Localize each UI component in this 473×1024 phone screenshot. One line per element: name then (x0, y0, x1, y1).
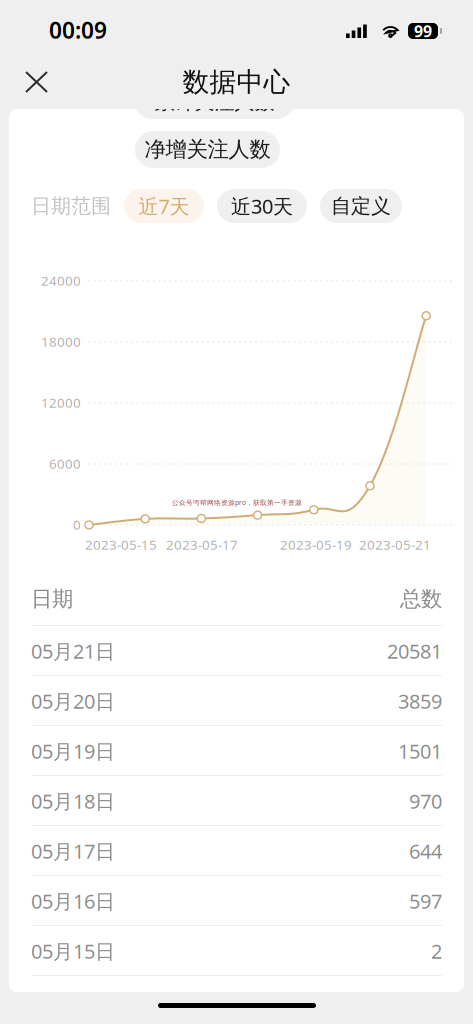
staticText: 99 (414, 20, 432, 42)
staticText: 6000 (49, 455, 81, 472)
staticText: 公众号丐帮网络资源pro，获取第一手资源 (172, 498, 302, 507)
staticText: 05月18日 (31, 788, 115, 814)
staticText: 18000 (41, 333, 81, 350)
staticText: 近7天 (138, 193, 189, 219)
button[interactable]: 近7天 (124, 189, 204, 223)
button[interactable]: 05月17日 (9, 826, 464, 876)
staticText: 2023-05-21 (359, 536, 431, 553)
staticText: 597 (409, 888, 442, 914)
staticText: 24000 (41, 272, 81, 289)
button[interactable]: 05月15日 (9, 926, 464, 976)
staticText: 05月15日 (31, 938, 115, 964)
staticText: 05月19日 (31, 738, 115, 764)
staticText: 05月16日 (31, 888, 115, 914)
staticText: 2 (431, 938, 442, 964)
button[interactable]: 05月21日 (9, 626, 464, 676)
staticText: 3859 (398, 688, 442, 714)
staticText: 970 (409, 788, 442, 814)
staticText: 2023-05-19 (280, 536, 352, 553)
staticText: 2023-05-17 (166, 536, 238, 553)
staticText: 总数 (400, 586, 442, 612)
button[interactable]: 累计关注人数 (135, 85, 294, 119)
staticText: 20581 (387, 638, 442, 664)
staticText: 净增关注人数 (144, 136, 270, 163)
staticText: 05月17日 (31, 838, 115, 864)
staticText: 00:09 (49, 15, 107, 45)
button[interactable]: 05月20日 (9, 676, 464, 726)
button[interactable]: 05月16日 (9, 876, 464, 926)
button[interactable]: 05月18日 (9, 776, 464, 826)
staticText: 近30天 (231, 193, 293, 219)
staticText: 05月20日 (31, 688, 115, 714)
staticText: 1501 (398, 738, 442, 764)
staticText: 自定义 (331, 194, 391, 218)
staticText: 2023-05-15 (85, 536, 157, 553)
button[interactable]: 近30天 (217, 189, 307, 223)
staticText: 644 (409, 838, 442, 864)
staticText: 日期 (31, 586, 73, 612)
staticText: 数据中心 (182, 66, 290, 98)
staticText: 0 (73, 516, 81, 533)
button[interactable]: 05月19日 (9, 726, 464, 776)
button[interactable]: Close (13, 59, 60, 105)
button[interactable]: 净增关注人数 (135, 131, 280, 168)
staticText: 累计关注人数 (154, 90, 274, 114)
staticText: 05月21日 (31, 638, 115, 664)
staticText: 12000 (41, 394, 81, 411)
staticText: 日期范围 (31, 194, 111, 218)
button[interactable]: 自定义 (320, 189, 402, 223)
